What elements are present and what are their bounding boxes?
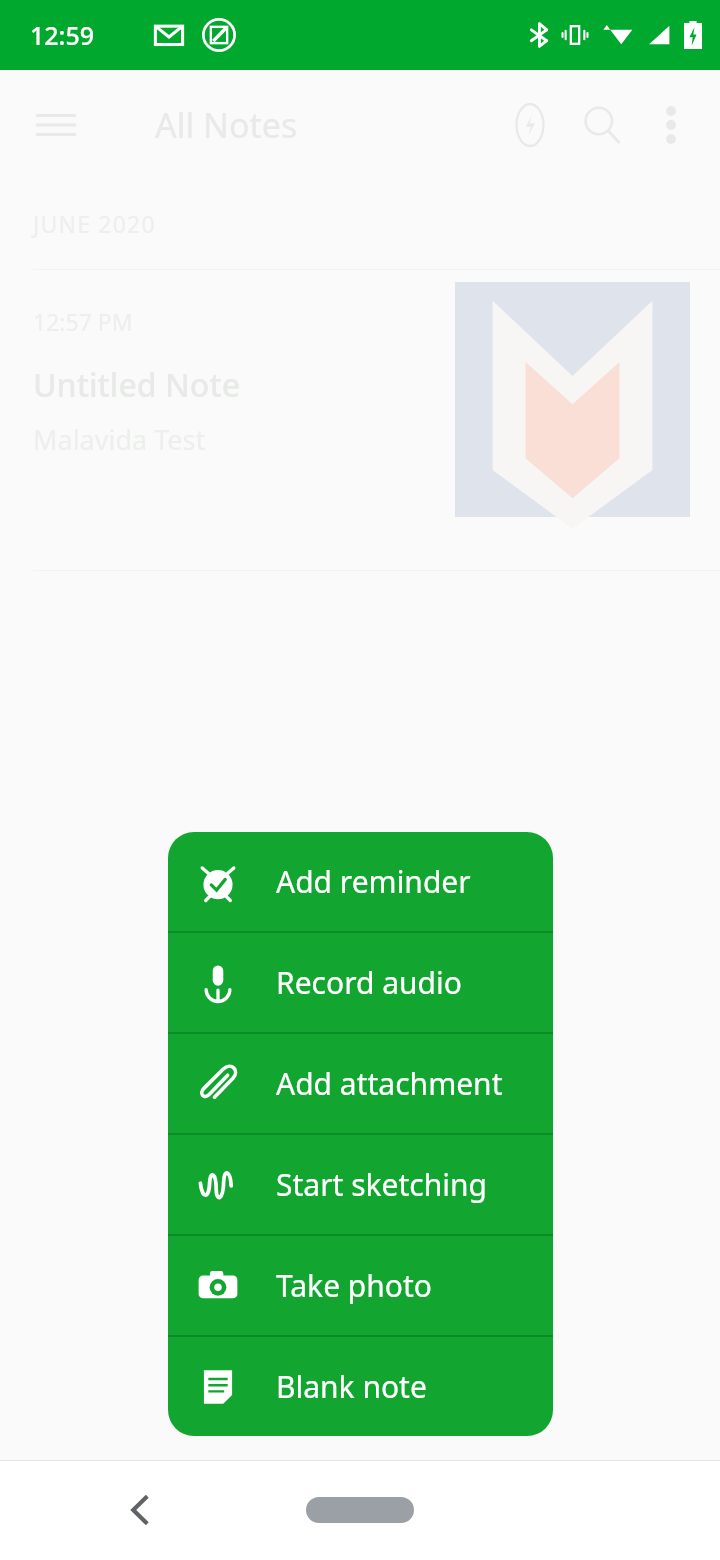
button[interactable]: Start sketching [168, 1135, 553, 1234]
staticText: Untitled Note [33, 363, 241, 407]
staticText: JUNE 2020 [33, 208, 156, 239]
staticText: All Notes [155, 102, 298, 148]
button[interactable]: Take photo [168, 1236, 553, 1335]
staticText: Blank note [276, 1366, 427, 1407]
staticText: Add reminder [276, 861, 471, 902]
button[interactable]: More options [638, 92, 704, 158]
button[interactable]: Home [306, 1497, 414, 1523]
button[interactable]: Menu [22, 91, 90, 159]
staticText: Start sketching [276, 1164, 487, 1205]
staticText: 12:59 [30, 18, 95, 52]
button[interactable]: Back [105, 1475, 175, 1545]
button[interactable]: 12:57 PM [0, 270, 720, 570]
staticText: 12:57 PM [33, 306, 133, 337]
staticText: Take photo [276, 1265, 432, 1306]
button[interactable]: Add reminder [168, 832, 553, 931]
staticText: Add attachment [276, 1063, 503, 1104]
button[interactable]: Record audio [168, 933, 553, 1032]
button[interactable]: Quick actions [494, 89, 566, 161]
staticText: Record audio [276, 962, 462, 1003]
button[interactable]: Blank note [168, 1337, 553, 1436]
button[interactable]: Search [566, 89, 638, 161]
button[interactable]: Add attachment [168, 1034, 553, 1133]
staticText: Malavida Test [33, 421, 206, 458]
